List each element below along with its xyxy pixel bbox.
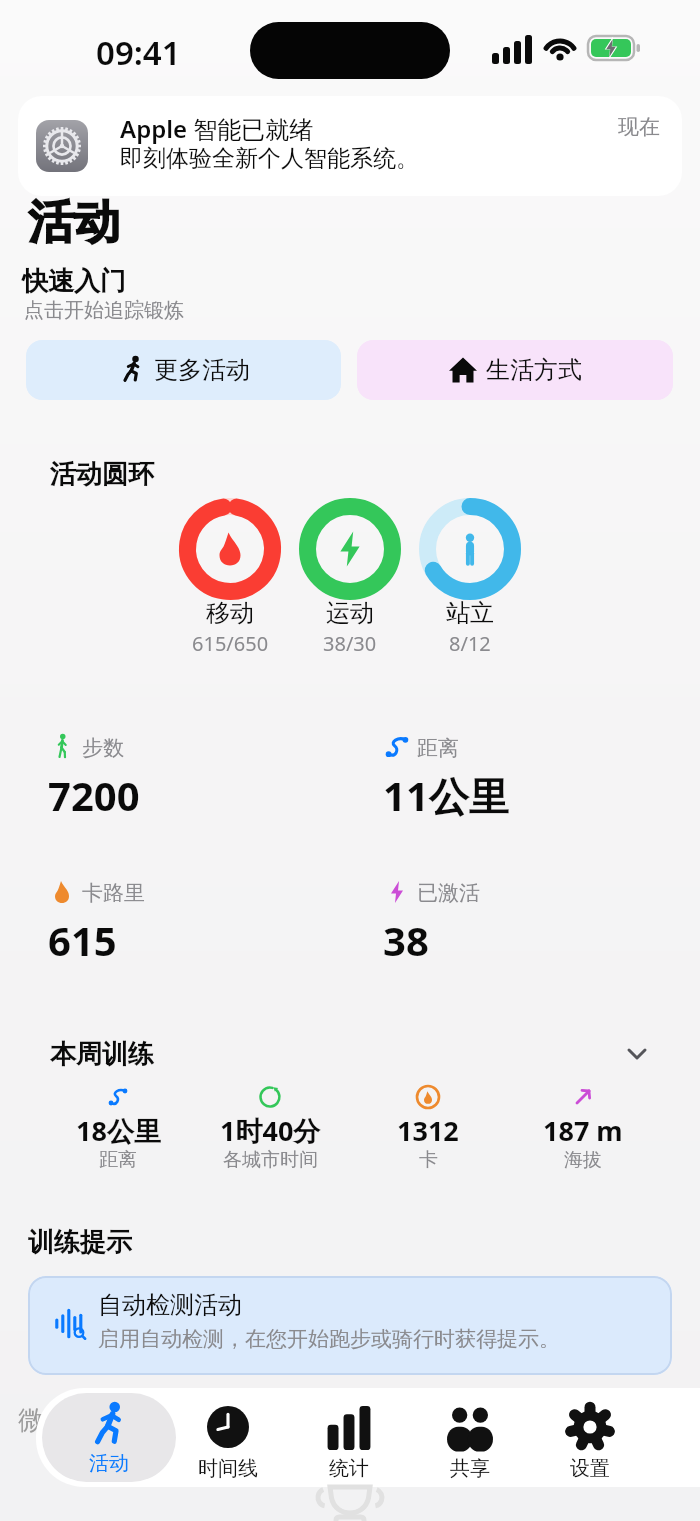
staticText: 1312 — [397, 1112, 459, 1149]
staticText: 统计 — [329, 1456, 369, 1481]
staticText: 启用自动检测，在您开始跑步或骑行时获得提示。 — [98, 1326, 560, 1352]
staticText: 7200 — [48, 768, 140, 822]
staticText: 38/30 — [323, 630, 377, 657]
staticText: 快速入门 — [22, 265, 126, 298]
staticText: 18公里 — [76, 1112, 161, 1149]
button[interactable]: 时间线 — [173, 1398, 283, 1488]
button[interactable]: 统计 — [294, 1398, 404, 1488]
staticText: 运动 — [326, 598, 374, 628]
button[interactable]: 生活方式 — [357, 340, 673, 400]
staticText: 设置 — [570, 1456, 610, 1481]
staticText: 卡 — [419, 1148, 438, 1172]
staticText: 09:41 — [96, 30, 181, 75]
staticText: 距离 — [417, 735, 459, 761]
button[interactable]: 设置 — [535, 1398, 645, 1488]
staticText: 1时40分 — [220, 1112, 321, 1149]
staticText: 微 — [18, 1404, 44, 1437]
staticText: 即刻体验全新个人智能系统。 — [120, 144, 419, 173]
staticText: 卡路里 — [82, 880, 145, 906]
staticText: 活动圆环 — [50, 458, 154, 491]
button[interactable]: 共享 — [415, 1398, 525, 1488]
staticText: 活动 — [89, 1451, 129, 1476]
staticText: 更多活动 — [154, 355, 250, 385]
staticText: 38 — [383, 913, 429, 967]
staticText: 生活方式 — [486, 355, 582, 385]
staticText: 步数 — [82, 735, 124, 761]
staticText: 8/12 — [449, 630, 491, 657]
staticText: 本周训练 — [50, 1038, 154, 1071]
staticText: 自动检测活动 — [98, 1290, 242, 1320]
staticText: Apple 智能已就绪 — [120, 112, 314, 145]
staticText: 已激活 — [417, 880, 480, 906]
staticText: 距离 — [99, 1148, 137, 1172]
staticText: 共享 — [450, 1456, 490, 1481]
staticText: 各城市时间 — [223, 1148, 318, 1172]
button[interactable]: 更多活动 — [26, 340, 341, 400]
button[interactable]: 自动检测活动 — [28, 1276, 672, 1375]
staticText: 活动 — [28, 194, 120, 252]
staticText: 615/650 — [192, 630, 269, 657]
staticText: 点击开始追踪锻炼 — [24, 298, 184, 323]
staticText: 现在 — [618, 114, 660, 140]
button[interactable]: 活动 — [42, 1393, 176, 1482]
staticText: 海拔 — [564, 1148, 602, 1172]
staticText: 615 — [48, 913, 117, 967]
staticText: 训练提示 — [28, 1226, 132, 1259]
staticText: 站立 — [446, 598, 494, 628]
staticText: 时间线 — [198, 1456, 258, 1481]
staticText: 移动 — [206, 598, 254, 628]
button[interactable]: Apple 智能已就绪 — [18, 96, 682, 196]
staticText: 11公里 — [383, 768, 509, 823]
staticText: 187 m — [543, 1112, 623, 1149]
